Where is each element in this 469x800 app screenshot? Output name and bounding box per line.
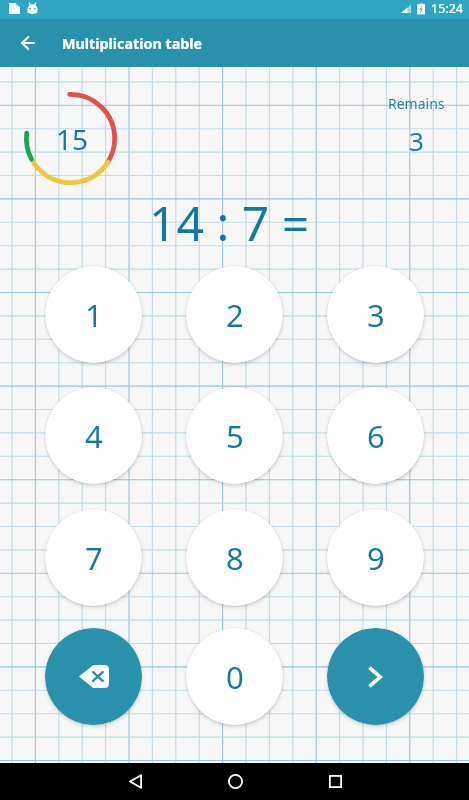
button[interactable]: Back	[0, 19, 56, 67]
staticText: 1	[85, 294, 103, 336]
button[interactable]: 2	[186, 266, 283, 363]
button[interactable]: 7	[45, 509, 142, 606]
button[interactable]: 4	[45, 387, 142, 484]
staticText: 5	[226, 415, 244, 457]
button[interactable]: 9	[327, 509, 424, 606]
button[interactable]: Next	[327, 628, 424, 725]
staticText: 8	[226, 537, 244, 579]
staticText: 15:24	[431, 0, 463, 17]
button[interactable]: 0	[186, 628, 283, 725]
button[interactable]: Back	[85, 763, 185, 800]
button[interactable]: 8	[186, 509, 283, 606]
button[interactable]: Backspace	[45, 628, 142, 725]
staticText: 14 : 7 =	[149, 190, 310, 250]
button[interactable]: Home	[185, 763, 285, 800]
staticText: Multiplication table	[62, 34, 203, 53]
staticText: 3	[409, 123, 424, 158]
staticText: 2	[226, 294, 244, 336]
button[interactable]: 3	[327, 266, 424, 363]
staticText: Remains	[388, 94, 445, 113]
button[interactable]: 6	[327, 387, 424, 484]
button[interactable]: 1	[45, 266, 142, 363]
button[interactable]: Recents	[285, 763, 385, 800]
staticText: 3	[367, 294, 385, 336]
staticText: 7	[85, 537, 103, 579]
staticText: 0	[226, 656, 244, 698]
staticText: 9	[367, 537, 385, 579]
staticText: 4	[85, 415, 103, 457]
button[interactable]: 5	[186, 387, 283, 484]
staticText: 15	[56, 120, 89, 158]
staticText: 6	[367, 415, 385, 457]
